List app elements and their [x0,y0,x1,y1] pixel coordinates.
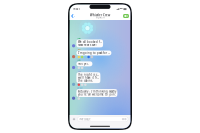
button[interactable]: Back [70,12,76,20]
staticText: the cabins. [78,79,93,82]
staticText: New Year's Eve! [78,43,97,47]
staticText: I'm going to pack for the fun [78,51,110,55]
staticText: Not yet. [78,62,89,66]
button[interactable]: iMessage [77,117,128,122]
staticText: iMessage [79,117,91,121]
staticText: Sam [78,70,81,72]
staticText: Jordan [78,87,83,89]
staticText: Jamie [78,59,81,61]
staticText: 6 [74,15,75,17]
staticText: We all booked for [78,40,102,44]
staticText: Actually - I'm thinking exactly [78,90,116,93]
staticText: The night is cold and [78,73,99,76]
staticText: 9:41 [73,7,80,11]
staticText: Alex [78,49,81,50]
staticText: you're all welcome to join. [78,93,116,96]
staticText: we'll have it frosted at [78,76,99,79]
staticText: Jamie [78,37,81,39]
staticText: Alex, Jamie, Sam [95,17,104,19]
button[interactable]: FaceTime [122,12,130,20]
button[interactable]: Apps [72,117,76,121]
staticText: Whistler Crew [90,13,110,17]
